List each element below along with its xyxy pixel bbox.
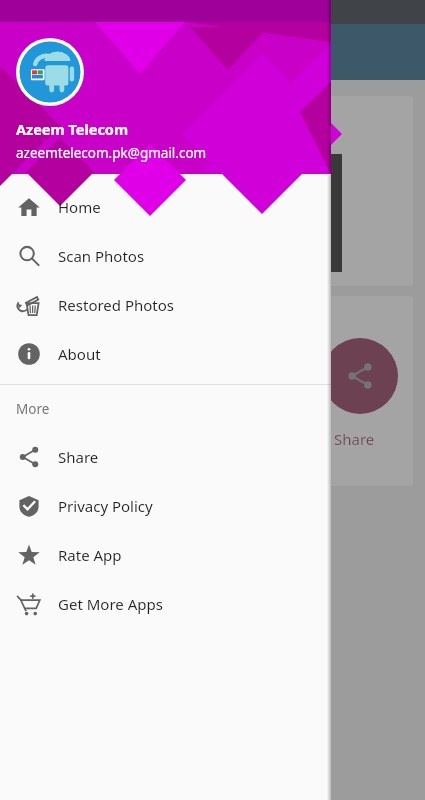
button[interactable]: Share bbox=[322, 338, 398, 414]
button[interactable]: Share bbox=[12, 296, 413, 486]
button[interactable]: Scan Photos bbox=[12, 96, 413, 286]
staticText: Restored Photos bbox=[58, 295, 175, 315]
staticText: Home bbox=[58, 197, 101, 217]
button[interactable]: Share bbox=[0, 432, 331, 481]
button[interactable]: Get More Apps bbox=[0, 579, 331, 628]
staticText: Scan Photos bbox=[58, 246, 145, 266]
staticText: Privacy Policy bbox=[58, 496, 153, 516]
staticText: More bbox=[16, 400, 50, 418]
staticText: Share bbox=[58, 447, 99, 467]
button[interactable]: Rate App bbox=[0, 530, 331, 579]
staticText: azeemtelecom.pk@gmail.com bbox=[16, 144, 207, 162]
button[interactable]: Scan Photos bbox=[0, 231, 331, 280]
staticText: Scan Photos bbox=[26, 110, 124, 133]
staticText: Share bbox=[334, 429, 375, 449]
staticText: Azeem Telecom bbox=[16, 119, 129, 139]
staticText: Get More Apps bbox=[58, 594, 163, 614]
button[interactable]: Privacy Policy bbox=[0, 481, 331, 530]
button[interactable]: Home bbox=[0, 182, 331, 231]
button[interactable]: Restored Photos bbox=[0, 280, 331, 329]
staticText: Rate App bbox=[58, 545, 122, 565]
button[interactable]: About bbox=[0, 329, 331, 378]
staticText: About bbox=[58, 344, 101, 364]
